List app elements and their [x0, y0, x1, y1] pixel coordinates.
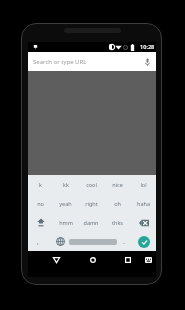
button[interactable]: cool	[78, 175, 104, 194]
staticText: cool	[86, 181, 97, 188]
staticText: ,	[37, 237, 39, 247]
staticText: damn	[83, 219, 99, 226]
button[interactable]	[69, 232, 117, 251]
button[interactable]: Search or type URL	[28, 52, 156, 71]
button[interactable]: right	[78, 194, 104, 213]
button[interactable]: lol	[130, 175, 156, 194]
staticText: haha	[137, 200, 150, 207]
staticText: thks	[112, 219, 123, 226]
button[interactable]: Shift	[28, 213, 53, 232]
staticText: lol	[140, 181, 147, 188]
staticText: .	[123, 237, 125, 247]
staticText: k	[39, 181, 42, 188]
button[interactable]: thks	[104, 213, 130, 232]
staticText: right	[85, 200, 98, 207]
staticText: hmm	[59, 219, 73, 226]
button[interactable]: ,	[28, 232, 48, 251]
staticText: kk	[63, 181, 69, 188]
button[interactable]: k	[28, 175, 53, 194]
button[interactable]: no	[28, 194, 53, 213]
button[interactable]: yeah	[53, 194, 78, 213]
staticText: yeah	[59, 200, 72, 207]
staticText: 10:28	[140, 43, 155, 51]
button[interactable]: Home	[83, 251, 103, 269]
button[interactable]: nice	[104, 175, 130, 194]
button[interactable]: hmm	[53, 213, 78, 232]
staticText: Search or type URL	[33, 58, 87, 66]
button[interactable]: .	[117, 232, 131, 251]
button[interactable]: Backspace	[130, 213, 156, 232]
staticText: oh	[114, 200, 121, 207]
button[interactable]: Back	[46, 251, 66, 269]
button[interactable]: Recent apps	[118, 251, 138, 269]
staticText: no	[37, 200, 44, 207]
button[interactable]: Change keyboard	[139, 251, 157, 269]
button[interactable]: kk	[53, 175, 78, 194]
button[interactable]: haha	[130, 194, 156, 213]
button[interactable]: Change language	[50, 232, 70, 251]
button[interactable]: oh	[104, 194, 130, 213]
button[interactable]: damn	[78, 213, 104, 232]
button[interactable]: Send	[133, 232, 154, 251]
staticText: nice	[112, 181, 123, 188]
